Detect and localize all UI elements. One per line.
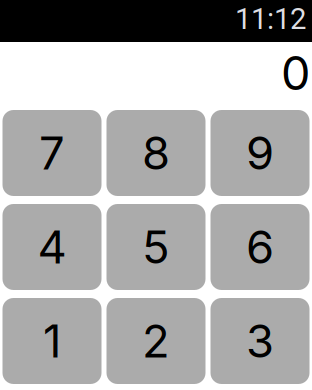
staticText: 1 [43, 314, 61, 368]
staticText: 3 [246, 314, 274, 368]
button[interactable]: 4 [2, 204, 101, 290]
button[interactable]: 3 [210, 298, 309, 384]
button[interactable]: 7 [2, 110, 101, 196]
button[interactable]: 2 [106, 298, 205, 384]
staticText: 8 [142, 126, 170, 180]
staticText: 2 [142, 314, 170, 368]
staticText: 6 [246, 220, 274, 274]
staticText: 4 [37, 220, 66, 274]
staticText: 7 [39, 126, 65, 180]
button[interactable]: 6 [210, 204, 309, 290]
staticText: 11:12 [235, 2, 306, 36]
staticText: 9 [246, 126, 274, 180]
button[interactable]: 1 [2, 298, 101, 384]
staticText: 5 [142, 220, 170, 274]
button[interactable]: 8 [106, 110, 205, 196]
button[interactable]: 9 [210, 110, 309, 196]
button[interactable]: 5 [106, 204, 205, 290]
staticText: 0 [281, 45, 310, 101]
